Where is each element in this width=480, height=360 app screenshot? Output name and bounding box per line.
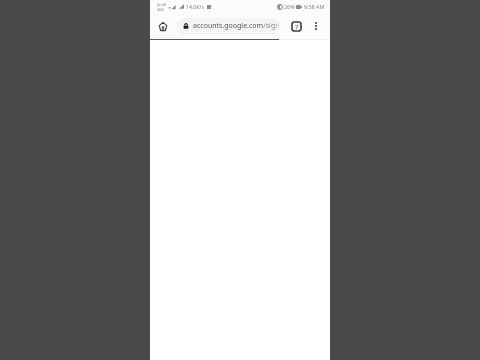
button[interactable]: More options [308, 18, 324, 34]
staticText: 9:58 AM [304, 3, 325, 10]
staticText: 7 [295, 23, 299, 31]
button[interactable]: Home [155, 18, 171, 34]
staticText: Jio 4G [157, 2, 167, 7]
staticText: accounts.google.com/signi [193, 21, 280, 31]
staticText: 26% [284, 3, 295, 10]
staticText: 14.0K/s [186, 3, 204, 10]
button[interactable]: Tabs [288, 18, 304, 34]
button[interactable]: accounts.google.com/signi [176, 18, 280, 34]
staticText: 46% [157, 7, 164, 12]
